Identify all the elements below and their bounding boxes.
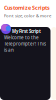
staticText: Customize Scripts	[4, 4, 50, 11]
staticText: My First Script	[12, 28, 41, 34]
staticText: Font size, color & more	[4, 13, 51, 19]
staticText: Welcome to the Teleprompter! This is an	[4, 34, 46, 53]
